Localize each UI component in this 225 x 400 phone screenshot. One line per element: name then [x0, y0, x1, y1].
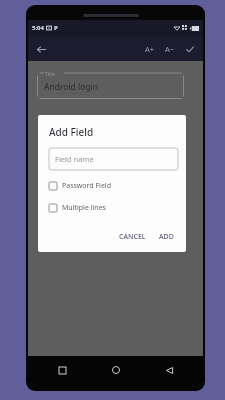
staticText: Password Field — [62, 181, 111, 191]
button[interactable]: Increase text size — [140, 39, 160, 59]
button[interactable]: Field name — [49, 148, 178, 170]
staticText: 5:04 — [32, 24, 44, 32]
staticText: CANCEL — [119, 232, 146, 242]
staticText: P — [54, 24, 58, 32]
staticText: Add Field — [49, 125, 94, 139]
staticText: Multiple lines — [62, 203, 106, 213]
staticText: A+ — [145, 44, 155, 54]
button[interactable]: Recent apps — [54, 362, 70, 378]
button[interactable]: Back — [32, 40, 50, 58]
staticText: Title — [45, 71, 55, 78]
button[interactable]: Title — [37, 69, 184, 99]
staticText: Field name — [55, 154, 94, 164]
button[interactable]: Decrease text size — [160, 39, 180, 59]
button[interactable]: Home — [108, 362, 124, 378]
staticText: A− — [165, 44, 175, 54]
staticText: ADD — [159, 232, 174, 242]
staticText: Android login — [44, 81, 99, 93]
button[interactable]: Back — [161, 362, 177, 378]
button[interactable]: Save — [180, 39, 200, 59]
button[interactable]: CANCEL — [115, 229, 150, 245]
button[interactable]: ADD — [155, 229, 178, 245]
button[interactable]: Password Field — [49, 181, 178, 191]
button[interactable]: Multiple lines — [49, 203, 178, 213]
